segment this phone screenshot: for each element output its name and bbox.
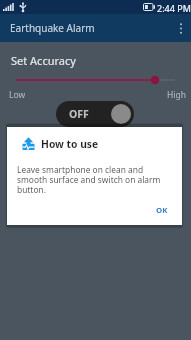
staticText: Earthquake Alarm: [10, 21, 95, 35]
staticText: Set Accuracy: [11, 53, 76, 68]
button[interactable]: More options: [171, 14, 191, 42]
staticText: Leave smartphone on clean and smooth sur…: [17, 164, 169, 195]
staticText: 2:44 PM: [157, 2, 191, 14]
staticText: Low: [9, 89, 26, 101]
button[interactable]: [0, 73, 191, 87]
button[interactable]: OK: [150, 201, 174, 220]
button[interactable]: OFF: [56, 101, 134, 127]
staticText: OK: [156, 205, 168, 216]
staticText: How to use: [41, 137, 99, 151]
staticText: High: [167, 89, 186, 101]
staticText: OFF: [69, 107, 89, 121]
